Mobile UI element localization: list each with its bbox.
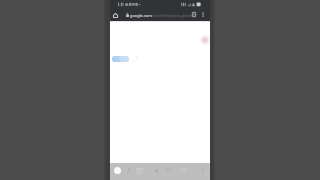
button[interactable]: Settings	[179, 164, 189, 177]
button[interactable]: More	[200, 164, 210, 177]
staticText: google.com	[130, 13, 152, 18]
button[interactable]: Clipboard	[164, 164, 174, 177]
button[interactable]: Voice input	[128, 164, 138, 177]
button[interactable]: Selected suggestion	[112, 56, 129, 62]
button[interactable]: Google Assistant	[114, 167, 121, 174]
staticText: /search?q=best+pizza	[152, 13, 192, 18]
button[interactable]: Switch tabs	[188, 10, 199, 19]
button[interactable]: Home	[110, 10, 121, 21]
button[interactable]: Suggestions	[135, 164, 145, 177]
button[interactable]: More options	[198, 10, 207, 19]
button[interactable]: Stickers	[153, 164, 163, 177]
